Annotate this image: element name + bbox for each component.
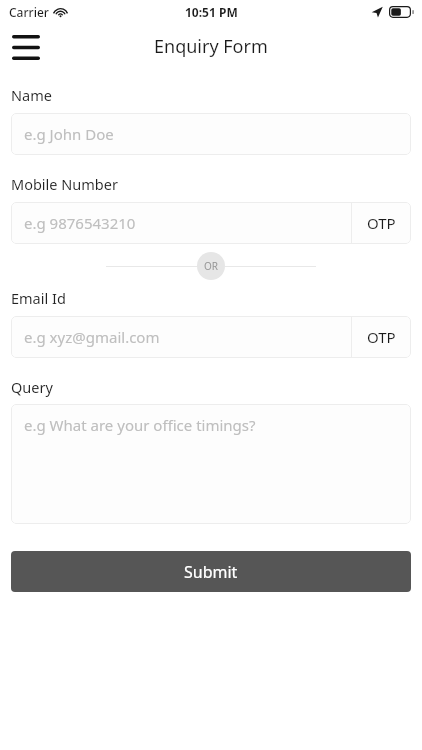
button[interactable]: OTP [352, 202, 411, 244]
staticText: Mobile Number [11, 174, 118, 194]
staticText: Submit [184, 561, 238, 583]
button[interactable]: Submit [11, 551, 411, 592]
staticText: e.g What are your office timings? [24, 415, 256, 435]
staticText: Enquiry Form [154, 34, 268, 59]
staticText: OTP [367, 327, 396, 347]
staticText: OTP [367, 213, 396, 233]
staticText: 10:51 PM [185, 4, 238, 20]
button[interactable]: e.g xyz@gmail.com [11, 316, 411, 358]
staticText: Email Id [11, 288, 66, 308]
button[interactable]: e.g What are your office timings? [11, 404, 411, 524]
staticText: Name [11, 85, 52, 105]
button[interactable]: Open navigation menu [6, 27, 46, 67]
button[interactable]: OTP [352, 316, 411, 358]
button[interactable]: e.g John Doe [11, 113, 411, 155]
staticText: OR [204, 259, 219, 273]
staticText: e.g John Doe [24, 124, 114, 144]
staticText: Carrier [9, 4, 49, 20]
staticText: e.g 9876543210 [24, 213, 136, 233]
staticText: Query [11, 377, 53, 397]
button[interactable]: e.g 9876543210 [11, 202, 411, 244]
staticText: e.g xyz@gmail.com [24, 327, 160, 347]
